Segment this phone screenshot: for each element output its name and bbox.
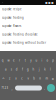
button[interactable]: cupcake flavors xyxy=(0,22,56,30)
staticText: o xyxy=(47,59,49,62)
button[interactable]: Search xyxy=(47,84,55,92)
staticText: b xyxy=(33,77,35,80)
button[interactable]: p xyxy=(50,56,56,65)
button[interactable]: Numbers xyxy=(1,83,9,92)
button[interactable]: cupcake frosting without butter xyxy=(0,39,56,47)
button[interactable]: j xyxy=(36,65,42,74)
staticText: · xyxy=(2,0,3,5)
button[interactable]: h xyxy=(31,65,36,74)
button[interactable]: x xyxy=(13,74,19,83)
button[interactable]: cupcake recipe xyxy=(0,5,56,13)
button[interactable]: d xyxy=(14,65,20,74)
button[interactable]: s xyxy=(8,65,14,74)
staticText: u xyxy=(35,59,37,62)
staticText: c xyxy=(21,77,22,80)
staticText: a xyxy=(5,68,6,71)
button[interactable]: Space xyxy=(15,85,42,90)
staticText: r xyxy=(19,59,20,62)
button[interactable]: z xyxy=(6,74,13,83)
staticText: j xyxy=(39,68,40,71)
staticText: h xyxy=(33,68,35,71)
staticText: cupcake frosting xyxy=(2,16,24,19)
staticText: f xyxy=(22,68,23,71)
staticText: cupcake frosting chocolate xyxy=(2,33,38,36)
button[interactable]: m xyxy=(43,74,49,83)
staticText: . xyxy=(44,85,45,91)
staticText: n xyxy=(39,77,41,80)
staticText: cupcake recipe xyxy=(2,7,22,11)
staticText: l xyxy=(50,68,51,71)
button[interactable]: Delete xyxy=(49,74,56,83)
button[interactable]: Shift xyxy=(0,74,6,83)
button[interactable]: v xyxy=(25,74,31,83)
staticText: ^ xyxy=(2,76,4,81)
button[interactable]: u xyxy=(34,56,39,65)
staticText: w xyxy=(7,59,9,62)
button[interactable]: cupcake frosting chocolate xyxy=(0,30,56,39)
button[interactable]: Comma xyxy=(10,83,14,92)
staticText: ?123 xyxy=(1,86,8,90)
staticText: p xyxy=(52,59,54,62)
button[interactable]: k xyxy=(42,65,48,74)
button[interactable]: w xyxy=(6,56,11,65)
button[interactable]: c xyxy=(19,74,25,83)
staticText: k xyxy=(44,68,45,71)
staticText: t xyxy=(25,59,26,62)
staticText: z xyxy=(9,77,10,80)
staticText: ▪▪▪ xyxy=(45,0,54,5)
staticText: e xyxy=(13,59,15,62)
staticText: cupcake frosting without butter xyxy=(2,41,46,44)
button[interactable]: a xyxy=(3,65,8,74)
button[interactable]: b xyxy=(31,74,37,83)
button[interactable]: g xyxy=(25,65,31,74)
button[interactable]: e xyxy=(11,56,17,65)
button[interactable]: n xyxy=(37,74,43,83)
staticText: x xyxy=(15,77,16,80)
staticText: q xyxy=(2,59,4,62)
staticText: x xyxy=(52,76,54,81)
button[interactable]: Period xyxy=(43,83,46,92)
staticText: s xyxy=(11,68,12,71)
button[interactable]: y xyxy=(28,56,34,65)
button[interactable]: cupcake frosting xyxy=(0,13,56,22)
staticText: y xyxy=(30,59,31,62)
button[interactable]: l xyxy=(48,65,53,74)
button[interactable]: f xyxy=(20,65,25,74)
button[interactable]: r xyxy=(17,56,22,65)
staticText: cupcake flavors xyxy=(2,24,21,28)
button[interactable]: t xyxy=(22,56,28,65)
button[interactable]: o xyxy=(45,56,50,65)
staticText: g xyxy=(27,68,29,71)
button[interactable]: i xyxy=(39,56,45,65)
staticText: d xyxy=(16,68,18,71)
staticText: m xyxy=(45,77,47,80)
button[interactable]: q xyxy=(0,56,6,65)
